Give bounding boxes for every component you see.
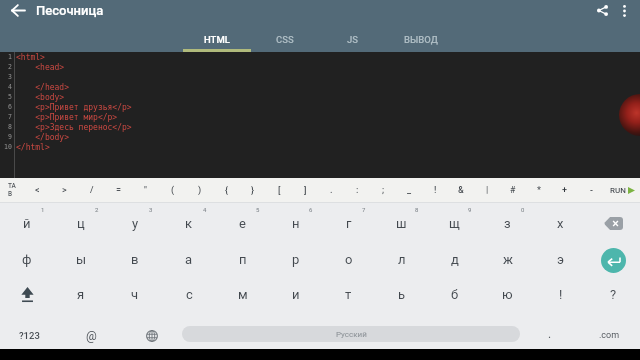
button[interactable]: л (375, 239, 428, 275)
button[interactable]: @ (58, 312, 124, 349)
staticText: " (144, 185, 147, 196)
button[interactable]: ! (534, 275, 587, 312)
staticText: </head> (16, 83, 69, 92)
staticText: { (225, 185, 229, 196)
button[interactable]: г (322, 203, 375, 239)
button[interactable]: р (269, 239, 322, 275)
button[interactable]: > (51, 178, 78, 202)
staticText: а (185, 252, 193, 267)
staticText: 2 (95, 206, 99, 213)
button[interactable]: ю (481, 275, 534, 312)
button[interactable]: ь (375, 275, 428, 312)
staticText: 5 (8, 93, 12, 101)
button[interactable]: н (269, 203, 322, 239)
staticText: з (504, 216, 511, 231)
button[interactable]: ] (292, 178, 318, 202)
button[interactable]: э (534, 239, 587, 275)
button[interactable]: ?123 (0, 312, 58, 349)
staticText: э (557, 252, 564, 267)
button[interactable]: я (54, 275, 108, 312)
button[interactable]: й (0, 203, 54, 239)
button[interactable]: ы (54, 239, 108, 275)
button[interactable]: м (216, 275, 269, 312)
staticText: 8 (415, 206, 419, 213)
button[interactable]: ж (481, 239, 534, 275)
button[interactable]: п (216, 239, 269, 275)
button[interactable]: к (162, 203, 216, 239)
button[interactable]: [ (266, 178, 292, 202)
button[interactable] (0, 275, 54, 312)
button[interactable]: CSS (251, 21, 319, 52)
button[interactable]: с (162, 275, 216, 312)
staticText: Русский (336, 330, 367, 339)
staticText: ? (610, 287, 617, 302)
button[interactable]: ц (54, 203, 108, 239)
button[interactable] (587, 203, 640, 239)
button[interactable]: ( (159, 178, 186, 202)
button[interactable]: .com (578, 312, 640, 349)
staticText: ш (396, 216, 407, 231)
button[interactable]: т (322, 275, 375, 312)
staticText: JS (347, 34, 359, 45)
button[interactable]: # (500, 178, 526, 202)
button[interactable]: а (162, 239, 216, 275)
staticText: @ (86, 329, 97, 343)
staticText: # (510, 185, 516, 196)
button[interactable]: з (481, 203, 534, 239)
button[interactable]: б (428, 275, 481, 312)
button[interactable]: " (132, 178, 159, 202)
button[interactable]: RUN (604, 178, 640, 202)
staticText: </body> (16, 133, 69, 142)
staticText: л (398, 252, 406, 267)
button[interactable]: & (448, 178, 474, 202)
button[interactable]: . (522, 312, 578, 349)
button[interactable]: ф (0, 239, 54, 275)
button[interactable]: ; (370, 178, 396, 202)
button[interactable]: - (578, 178, 604, 202)
button[interactable]: + (552, 178, 578, 202)
button[interactable]: ч (108, 275, 162, 312)
button[interactable]: ) (186, 178, 213, 202)
button[interactable]: / (78, 178, 105, 202)
button[interactable]: ВЫВОД (387, 21, 455, 52)
button[interactable]: у (108, 203, 162, 239)
button[interactable] (615, 0, 633, 21)
staticText: 5 (256, 206, 260, 213)
button[interactable]: : (344, 178, 370, 202)
button[interactable]: е (216, 203, 269, 239)
button[interactable]: ш (375, 203, 428, 239)
button[interactable]: _ (396, 178, 422, 202)
button[interactable]: TA B (0, 178, 24, 202)
button[interactable]: щ (428, 203, 481, 239)
button[interactable]: х (534, 203, 587, 239)
button[interactable] (589, 0, 615, 21)
staticText: 8 (8, 123, 12, 131)
staticText: CSS (276, 34, 294, 45)
button[interactable] (587, 239, 640, 275)
button[interactable]: . (318, 178, 344, 202)
button[interactable]: } (240, 178, 266, 202)
button[interactable]: | (474, 178, 500, 202)
staticText: * (537, 185, 541, 196)
staticText: <p>Здесь перенос</p> (16, 123, 132, 132)
button[interactable]: и (269, 275, 322, 312)
button[interactable]: д (428, 239, 481, 275)
button[interactable] (124, 312, 180, 349)
staticText: 7 (362, 206, 366, 213)
staticText: т (345, 287, 352, 302)
button[interactable]: = (105, 178, 132, 202)
button[interactable]: HTML (183, 21, 251, 52)
button[interactable] (0, 0, 36, 21)
button[interactable]: Русский (182, 326, 520, 342)
button[interactable]: ! (422, 178, 448, 202)
staticText: н (292, 216, 300, 231)
button[interactable]: { (213, 178, 240, 202)
button[interactable]: о (322, 239, 375, 275)
button[interactable]: в (108, 239, 162, 275)
staticText: я (77, 287, 85, 302)
button[interactable]: JS (319, 21, 387, 52)
button[interactable]: < (24, 178, 51, 202)
button[interactable]: * (526, 178, 552, 202)
staticText: 9 (8, 133, 12, 141)
button[interactable]: ? (587, 275, 640, 312)
